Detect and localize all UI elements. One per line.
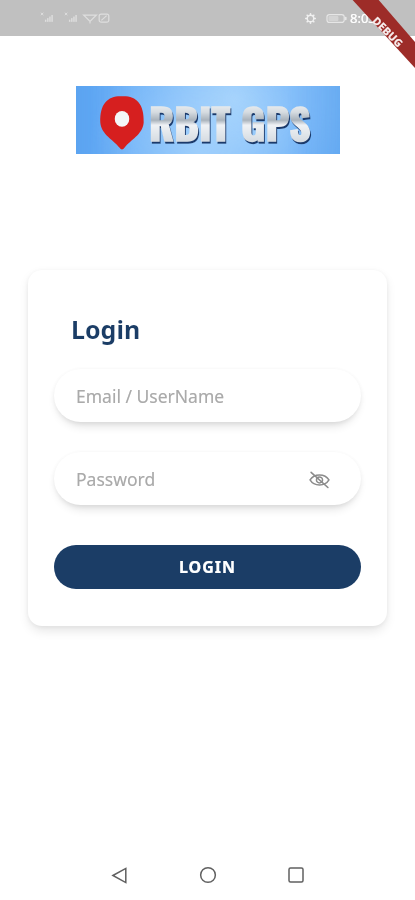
button[interactable]: Toggle password visibility bbox=[304, 464, 334, 494]
button[interactable]: Recents bbox=[272, 851, 320, 899]
staticText: 8:03 bbox=[350, 9, 376, 27]
staticText: Password bbox=[76, 467, 156, 491]
staticText: Email / UserName bbox=[76, 384, 225, 408]
staticText: RBIT GPS bbox=[150, 93, 312, 155]
staticText: DEBUG bbox=[370, 14, 406, 50]
button[interactable]: Password bbox=[54, 452, 361, 505]
button[interactable]: LOGIN bbox=[54, 545, 361, 589]
button[interactable]: Email / UserName bbox=[54, 369, 361, 422]
button[interactable]: Back bbox=[95, 851, 143, 899]
staticText: Login bbox=[71, 312, 141, 346]
staticText: RBIT GPS bbox=[149, 91, 311, 153]
staticText: LOGIN bbox=[179, 556, 237, 578]
button[interactable]: Home bbox=[184, 851, 232, 899]
